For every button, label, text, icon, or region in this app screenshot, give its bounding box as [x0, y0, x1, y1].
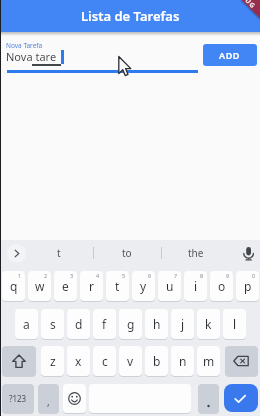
staticText: c [102, 353, 108, 369]
button[interactable]: u [158, 271, 181, 301]
staticText: 6 [148, 272, 152, 279]
button[interactable]: a [15, 309, 38, 339]
staticText: 3 [70, 272, 74, 279]
button[interactable]: g [119, 309, 142, 339]
staticText: z [50, 353, 56, 369]
button[interactable]: r [80, 271, 103, 301]
staticText: x [75, 353, 82, 369]
staticText: d [75, 316, 83, 332]
button[interactable] [2, 346, 36, 376]
staticText: n [179, 353, 187, 369]
button[interactable]: q [2, 271, 25, 301]
button[interactable]: ?123 [2, 384, 34, 413]
button[interactable]: f [93, 309, 116, 339]
button[interactable] [198, 384, 219, 413]
button[interactable]: w [28, 271, 51, 301]
staticText: Lista de Tarefas [81, 7, 180, 25]
button[interactable]: e [54, 271, 77, 301]
staticText: a [23, 316, 30, 332]
staticText: y [140, 278, 147, 294]
button[interactable] [225, 346, 258, 376]
staticText: 4 [96, 272, 100, 279]
button[interactable]: k [197, 309, 220, 339]
staticText: o [218, 278, 226, 294]
button[interactable]: l [223, 309, 246, 339]
staticText: s [50, 316, 56, 332]
staticText: DEBUG [232, 0, 258, 11]
staticText: v [127, 353, 134, 369]
button[interactable]: h [145, 309, 168, 339]
button[interactable]: s [41, 309, 64, 339]
staticText: Nova Tarefa [6, 41, 43, 50]
staticText: r [89, 278, 94, 294]
staticText: 1 [18, 272, 22, 279]
staticText: 2 [44, 272, 48, 279]
button[interactable]: ADD [203, 44, 257, 66]
button[interactable] [224, 384, 258, 412]
staticText: to [122, 246, 132, 260]
button[interactable]: , [38, 384, 59, 413]
staticText: 8 [200, 272, 204, 279]
staticText: l [233, 316, 237, 332]
staticText: k [205, 316, 212, 332]
button[interactable] [6, 38, 198, 72]
staticText: 5 [122, 272, 126, 279]
button[interactable]: o [210, 271, 233, 301]
button[interactable]: v [119, 346, 142, 376]
staticText: u [166, 278, 174, 294]
button[interactable]: x [67, 346, 90, 376]
staticText: h [153, 316, 161, 332]
staticText: , [47, 395, 50, 409]
staticText: 9 [226, 272, 230, 279]
button[interactable]: j [171, 309, 194, 339]
button[interactable]: n [171, 346, 194, 376]
staticText: b [153, 353, 161, 369]
button[interactable]: p [236, 271, 259, 301]
button[interactable]: t [106, 271, 129, 301]
button[interactable]: m [197, 346, 220, 376]
button[interactable]: t [39, 244, 79, 262]
button[interactable]: b [145, 346, 168, 376]
staticText: 7 [174, 272, 178, 279]
staticText: ?123 [9, 393, 27, 404]
button[interactable]: the [176, 244, 216, 262]
staticText: the [188, 246, 204, 260]
staticText: i [194, 278, 198, 294]
staticText: ADD [219, 49, 241, 61]
button[interactable]: to [107, 244, 147, 262]
staticText: w [35, 278, 45, 294]
staticText: Nova tare [6, 49, 57, 64]
button[interactable]: z [41, 346, 64, 376]
staticText: t [115, 278, 120, 294]
staticText: e [62, 278, 69, 294]
staticText: g [127, 316, 135, 332]
button[interactable] [63, 384, 86, 413]
button[interactable] [7, 244, 26, 263]
button[interactable]: d [67, 309, 90, 339]
staticText: q [10, 278, 18, 294]
staticText: p [244, 278, 252, 294]
staticText: j [181, 316, 185, 332]
staticText: 0 [252, 272, 256, 279]
button[interactable]: y [132, 271, 155, 301]
staticText: m [203, 353, 215, 369]
button[interactable] [240, 245, 257, 262]
button[interactable]: i [184, 271, 207, 301]
staticText: f [102, 316, 107, 332]
button[interactable]: c [93, 346, 116, 376]
staticText: t [57, 246, 61, 260]
